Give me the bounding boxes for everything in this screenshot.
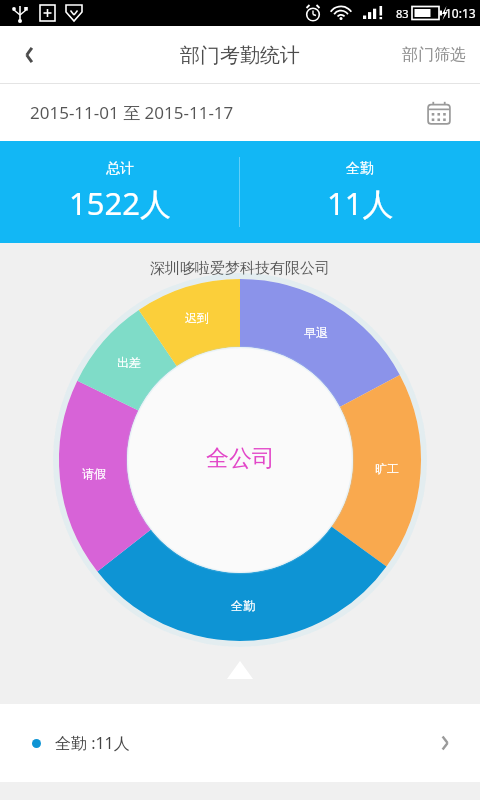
staticText: 总计	[106, 160, 134, 178]
staticText: 10:13	[445, 5, 476, 21]
staticText: 1522人	[69, 182, 171, 224]
staticText: 2015-11-01 至 2015-11-17	[30, 101, 234, 124]
staticText: 全勤	[346, 160, 374, 178]
staticText: 11人	[327, 182, 394, 224]
button[interactable]: 部门筛选	[388, 26, 480, 84]
staticText: 请假	[82, 466, 106, 481]
button[interactable]: 返回	[0, 26, 58, 84]
staticText: 全公司	[206, 444, 275, 473]
staticText: 全勤 :11人	[55, 732, 130, 754]
staticText: 早退	[304, 325, 328, 340]
staticText: 出差	[117, 355, 141, 370]
staticText: 全勤	[231, 598, 255, 613]
button[interactable]: 2015-11-01 至 2015-11-17	[0, 84, 480, 141]
button[interactable]: 全勤	[240, 141, 480, 243]
staticText: 旷工	[375, 461, 399, 476]
staticText: 深圳哆啦爱梦科技有限公司	[0, 259, 480, 278]
staticText: 部门筛选	[402, 45, 466, 65]
other: 选择日期	[424, 98, 454, 128]
button[interactable]: 总计	[0, 141, 239, 243]
staticText: 迟到	[185, 310, 209, 325]
staticText: 部门考勤统计	[180, 43, 300, 68]
button[interactable]: 全勤 :11人	[0, 704, 480, 782]
staticText: 83	[396, 6, 409, 21]
